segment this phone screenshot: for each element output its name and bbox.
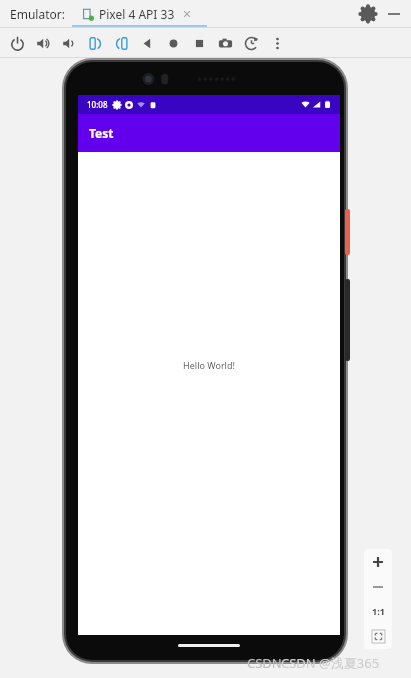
staticText: Test	[89, 125, 114, 141]
staticText: CSDN @浅夏365	[281, 654, 380, 672]
staticText: Emulator:	[10, 6, 65, 22]
button[interactable]: History	[238, 30, 264, 56]
button[interactable]: Fit to screen	[366, 624, 390, 648]
staticText: 1:1	[372, 605, 385, 617]
button[interactable]: Close tab	[181, 8, 193, 20]
button[interactable]: Pixel 4 API 33	[82, 2, 193, 26]
button[interactable]: Overview	[186, 30, 212, 56]
button[interactable]: Volume button	[345, 279, 350, 361]
button[interactable]: Home	[160, 30, 186, 56]
staticText: CSDN	[247, 654, 282, 672]
button[interactable]: Volume up	[30, 30, 56, 56]
button[interactable]: Rotate right	[108, 30, 134, 56]
button[interactable]: Minimize	[386, 6, 402, 22]
button[interactable]: Volume down	[56, 30, 82, 56]
button[interactable]: More	[264, 30, 290, 56]
button[interactable]: Screenshot	[212, 30, 238, 56]
staticText: 10:08	[87, 99, 108, 110]
button[interactable]: Power	[4, 30, 30, 56]
button[interactable]: 1:1	[366, 599, 390, 623]
button[interactable]: Back	[134, 30, 160, 56]
staticText: Hello World!	[183, 359, 235, 371]
staticText: Pixel 4 API 33	[99, 6, 175, 22]
button[interactable]: Power button	[345, 209, 350, 255]
button[interactable]: Zoom out	[366, 575, 390, 599]
button[interactable]: Rotate left	[82, 30, 108, 56]
button[interactable]: Settings	[360, 6, 376, 22]
button[interactable]: Zoom in	[366, 550, 390, 574]
